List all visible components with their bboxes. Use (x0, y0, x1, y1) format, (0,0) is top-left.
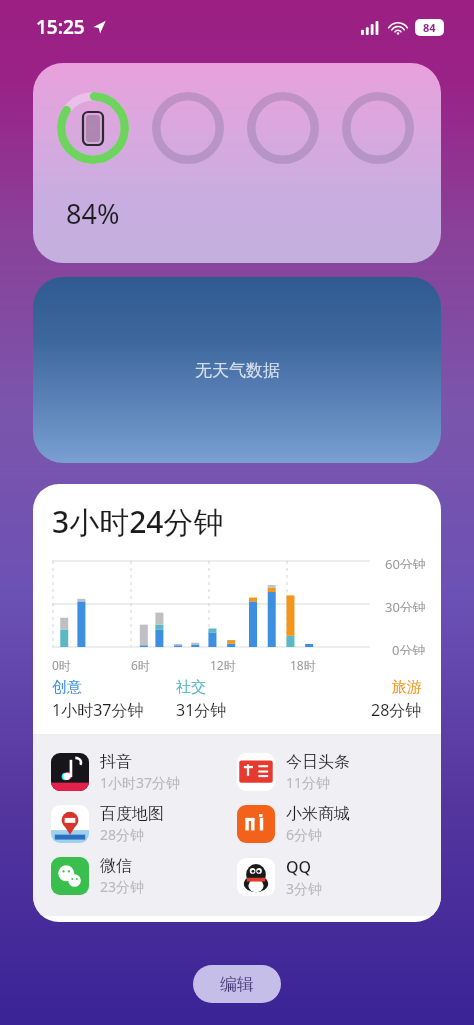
button[interactable]: 小米商城 (237, 804, 423, 844)
staticText: 百度地图 (100, 804, 164, 824)
staticText: 0分钟 (392, 641, 426, 655)
staticText: 23分钟 (100, 877, 145, 896)
staticText: 18时 (290, 657, 316, 673)
button[interactable]: 3小时24分钟 (33, 484, 441, 922)
staticText: 31分钟 (176, 699, 227, 721)
staticText: 11分钟 (286, 773, 331, 792)
staticText: 社交 (176, 678, 206, 697)
staticText: 编辑 (220, 974, 254, 995)
button[interactable]: 今日头条 (237, 752, 423, 792)
staticText: 3分钟 (286, 879, 323, 898)
button[interactable]: 无天气数据 (33, 277, 441, 463)
staticText: 0时 (52, 657, 71, 673)
staticText: 84% (66, 195, 120, 232)
staticText: 旅游 (392, 678, 422, 697)
button[interactable]: 微信 (51, 856, 237, 896)
staticText: 今日头条 (286, 752, 350, 772)
staticText: 小米商城 (286, 804, 350, 824)
staticText: 28分钟 (100, 825, 145, 844)
staticText: 微信 (100, 856, 132, 876)
staticText: 15:25 (36, 14, 85, 40)
staticText: QQ (286, 856, 312, 878)
staticText: 1小时37分钟 (52, 699, 144, 721)
staticText: 30分钟 (385, 598, 426, 612)
button[interactable]: 84% (33, 63, 441, 263)
staticText: 60分钟 (385, 555, 426, 569)
staticText: 无天气数据 (195, 360, 280, 381)
staticText: 6分钟 (286, 825, 323, 844)
staticText: 28分钟 (371, 699, 422, 721)
staticText: 12时 (210, 657, 236, 673)
staticText: 抖音 (100, 752, 132, 772)
button[interactable]: 百度地图 (51, 804, 237, 844)
button[interactable]: 抖音 (51, 752, 237, 792)
button[interactable]: QQ (237, 856, 423, 898)
button[interactable]: 编辑 (193, 965, 281, 1003)
staticText: 创意 (52, 678, 82, 697)
staticText: 3小时24分钟 (52, 501, 224, 542)
staticText: 84 (423, 20, 436, 35)
staticText: 6时 (131, 657, 150, 673)
staticText: 1小时37分钟 (100, 773, 181, 792)
